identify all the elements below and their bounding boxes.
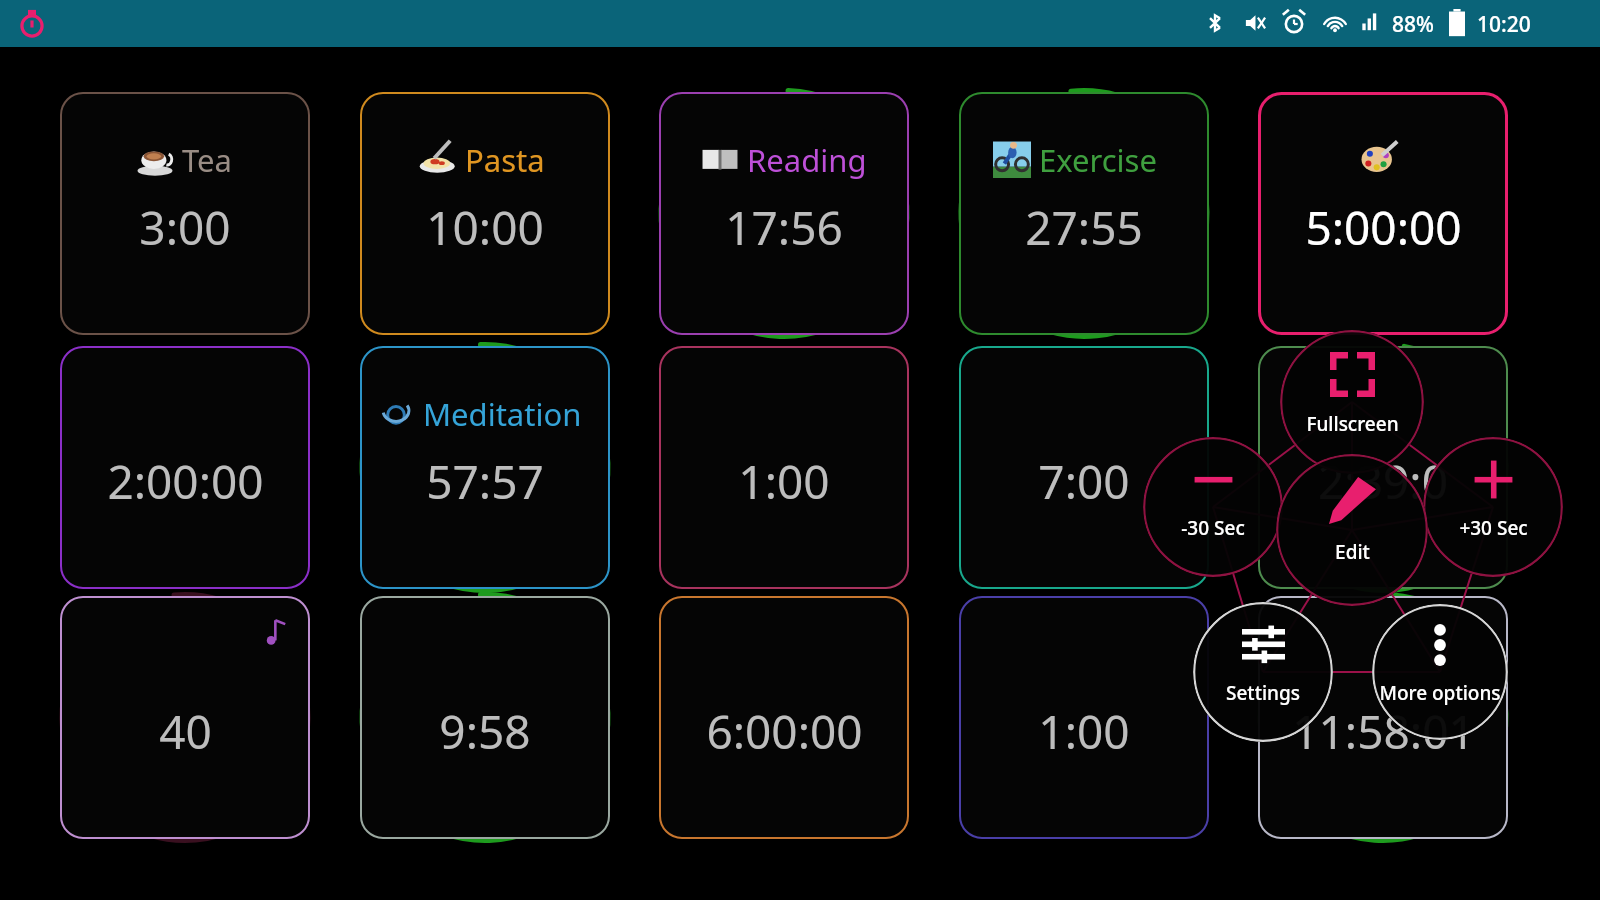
- staticText: -30 Sec: [1181, 515, 1245, 541]
- staticText: 88%: [1392, 10, 1434, 39]
- staticText: 3:00: [139, 196, 231, 259]
- staticText: Exercise: [1039, 139, 1157, 181]
- staticText: Tea: [182, 139, 232, 181]
- staticText: 57:57: [426, 450, 544, 513]
- button[interactable]: [60, 92, 310, 335]
- staticText: 6:00:00: [706, 700, 863, 763]
- staticText: 1:00: [738, 450, 830, 513]
- button[interactable]: [60, 596, 310, 839]
- button[interactable]: Settings: [1193, 602, 1333, 742]
- staticText: 5:00:00: [1305, 196, 1462, 259]
- button[interactable]: More options: [1372, 604, 1508, 740]
- button[interactable]: [659, 596, 909, 839]
- button[interactable]: [1258, 346, 1508, 589]
- staticText: Edit: [1335, 539, 1370, 565]
- button[interactable]: [1258, 92, 1508, 335]
- button[interactable]: [959, 596, 1209, 839]
- staticText: 2:00:00: [107, 450, 264, 513]
- staticText: +30 Sec: [1459, 515, 1528, 541]
- button[interactable]: Edit: [1276, 454, 1428, 606]
- button[interactable]: [1258, 596, 1508, 839]
- button[interactable]: [959, 346, 1209, 589]
- button[interactable]: [360, 596, 610, 839]
- staticText: 10:20: [1477, 10, 1531, 39]
- button[interactable]: [60, 346, 310, 589]
- staticText: 17:56: [725, 196, 843, 259]
- other: Timer running: [18, 10, 46, 38]
- staticText: 1:00: [1038, 700, 1130, 763]
- staticText: More options: [1379, 680, 1501, 706]
- button[interactable]: [959, 92, 1209, 335]
- staticText: 40: [159, 700, 212, 763]
- staticText: 27:55: [1025, 196, 1143, 259]
- button[interactable]: -30 Sec: [1143, 437, 1283, 577]
- staticText: Pasta: [465, 139, 545, 181]
- button[interactable]: +30 Sec: [1423, 437, 1563, 577]
- staticText: 10:00: [426, 196, 544, 259]
- staticText: Fullscreen: [1306, 411, 1399, 437]
- button[interactable]: Fullscreen: [1280, 330, 1424, 474]
- staticText: 11:58:01: [1292, 700, 1475, 763]
- staticText: Meditation: [423, 393, 582, 435]
- staticText: 7:00: [1038, 450, 1130, 513]
- button[interactable]: [360, 346, 610, 589]
- button[interactable]: [659, 92, 909, 335]
- staticText: 2:39:0: [1318, 450, 1448, 513]
- button[interactable]: [659, 346, 909, 589]
- button[interactable]: [360, 92, 610, 335]
- staticText: Settings: [1226, 680, 1300, 706]
- staticText: Reading: [747, 139, 867, 181]
- staticText: 9:58: [439, 700, 531, 763]
